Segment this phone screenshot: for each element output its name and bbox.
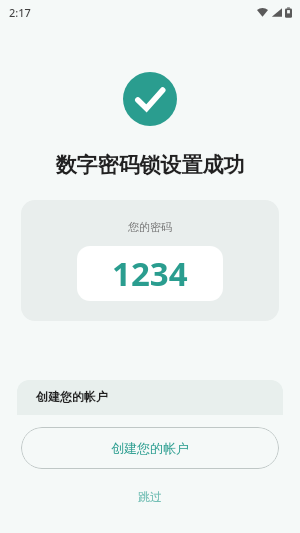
staticText: 数字密码锁设置成功 — [0, 152, 300, 178]
staticText: 创建您的帐户 — [111, 440, 189, 456]
staticText: 创建您的帐户 — [36, 389, 108, 404]
staticText: 2:17 — [9, 5, 31, 20]
staticText: 1234 — [112, 251, 188, 296]
staticText: 跳过 — [138, 489, 162, 504]
staticText: 您的密码 — [128, 220, 172, 234]
button[interactable]: 跳过 — [0, 483, 300, 509]
button[interactable]: 创建您的帐户 — [21, 427, 279, 469]
